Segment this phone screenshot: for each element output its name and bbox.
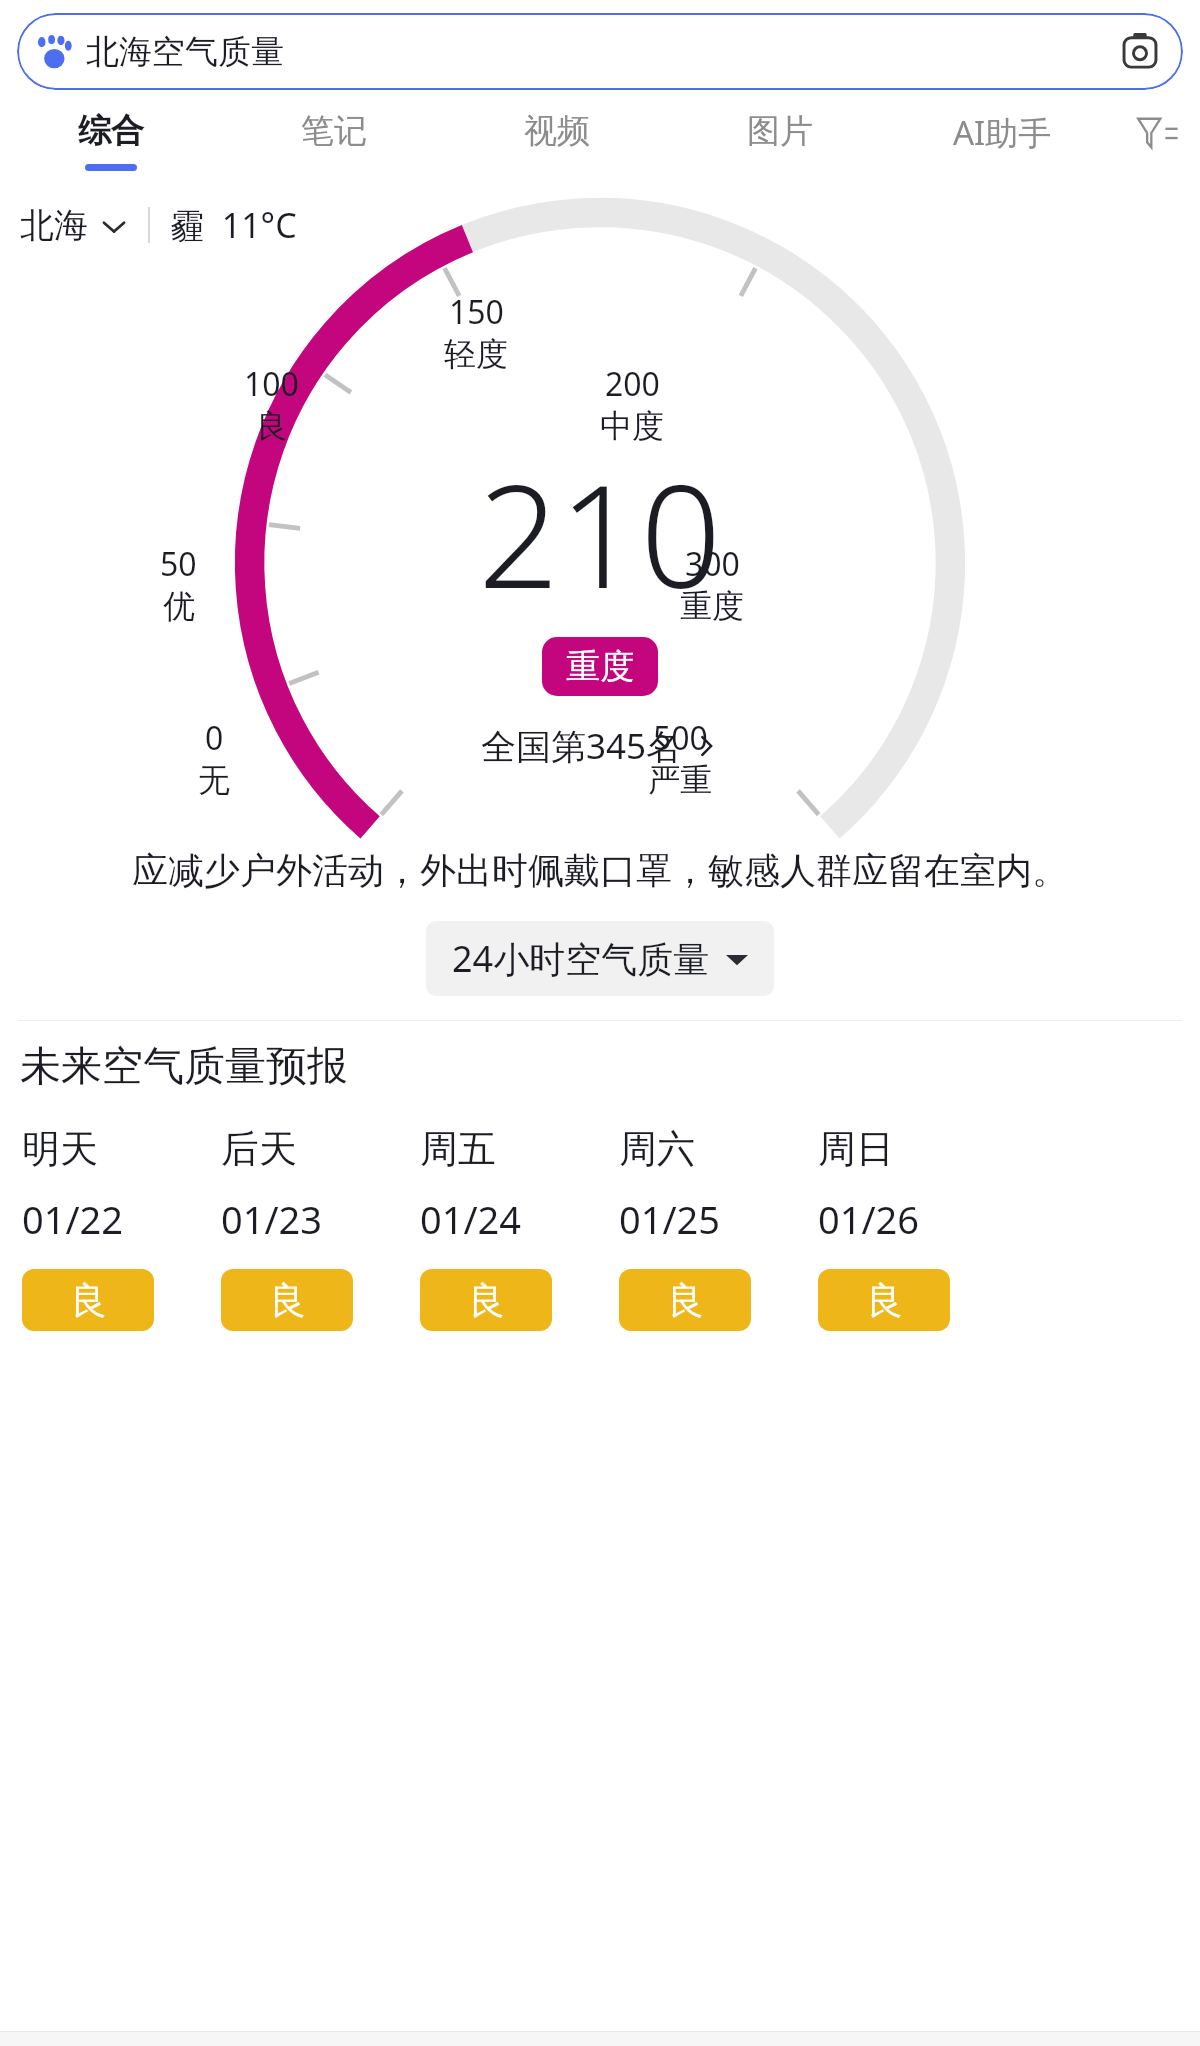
button[interactable]: 北海空气质量 [17, 13, 1183, 90]
button[interactable]: Camera search [1116, 28, 1164, 76]
staticText: 明天 [22, 1125, 98, 1173]
staticText: 严重 [648, 760, 712, 800]
staticText: 良 [866, 1277, 903, 1324]
staticText: 周五 [420, 1125, 496, 1173]
staticText: 视频 [524, 110, 590, 152]
staticText: 综合 [78, 110, 144, 152]
staticText: 300 [685, 542, 740, 586]
staticText: 中度 [600, 406, 664, 446]
button[interactable]: 笔记 [222, 108, 445, 173]
button[interactable]: AI助手 [891, 108, 1114, 176]
staticText: 210 [478, 436, 722, 629]
staticText: 重度 [566, 645, 634, 688]
staticText: 图片 [747, 110, 813, 152]
staticText: 重度 [680, 586, 744, 626]
staticText: 01/25 [619, 1193, 721, 1245]
staticText: 24小时空气质量 [452, 934, 710, 983]
button[interactable]: 全国第345名 [481, 722, 720, 770]
button[interactable]: Filter [1114, 112, 1200, 154]
staticText: 01/24 [420, 1193, 522, 1245]
staticText: 周六 [619, 1125, 695, 1173]
button[interactable]: 图片 [668, 108, 891, 173]
staticText: 500 [653, 716, 708, 760]
staticText: 良 [269, 1277, 306, 1324]
staticText: 北海空气质量 [86, 31, 284, 73]
staticText: 良 [468, 1277, 505, 1324]
staticText: 01/23 [221, 1193, 323, 1245]
button[interactable]: 重度 [542, 637, 658, 696]
staticText: 01/22 [22, 1193, 124, 1245]
staticText: 100 [244, 362, 299, 406]
staticText: 优 [163, 586, 195, 626]
button[interactable]: 综合 [0, 108, 222, 173]
button[interactable]: 周六 [619, 1125, 818, 1331]
staticText: 良 [667, 1277, 704, 1324]
staticText: 01/26 [818, 1193, 920, 1245]
button[interactable]: 24小时空气质量 [426, 921, 774, 996]
button[interactable]: 周五 [420, 1125, 619, 1331]
button[interactable]: 后天 [221, 1125, 420, 1331]
staticText: 良 [256, 406, 288, 446]
staticText: 未来空气质量预报 [20, 1041, 348, 1093]
staticText: 200 [605, 362, 660, 406]
staticText: 霾 11°C [170, 202, 297, 248]
staticText: 50 [160, 542, 197, 586]
button[interactable]: 北海 [20, 204, 128, 247]
button[interactable]: 明天 [22, 1125, 221, 1331]
staticText: 周日 [818, 1125, 894, 1173]
staticText: 笔记 [301, 110, 367, 152]
button[interactable]: 视频 [445, 108, 668, 173]
staticText: 后天 [221, 1125, 297, 1173]
staticText: 良 [70, 1277, 107, 1324]
staticText: 无 [198, 760, 230, 800]
staticText: 轻度 [444, 334, 508, 374]
staticText: 全国第345名 [481, 722, 682, 770]
staticText: 150 [449, 290, 504, 334]
staticText: AI助手 [953, 110, 1052, 155]
staticText: 北海 [20, 204, 88, 247]
staticText: 0 [205, 716, 224, 760]
staticText: 应减少户外活动，外出时佩戴口罩，敏感人群应留在室内。 [46, 848, 1154, 893]
button[interactable]: 周日 [818, 1125, 1017, 1331]
